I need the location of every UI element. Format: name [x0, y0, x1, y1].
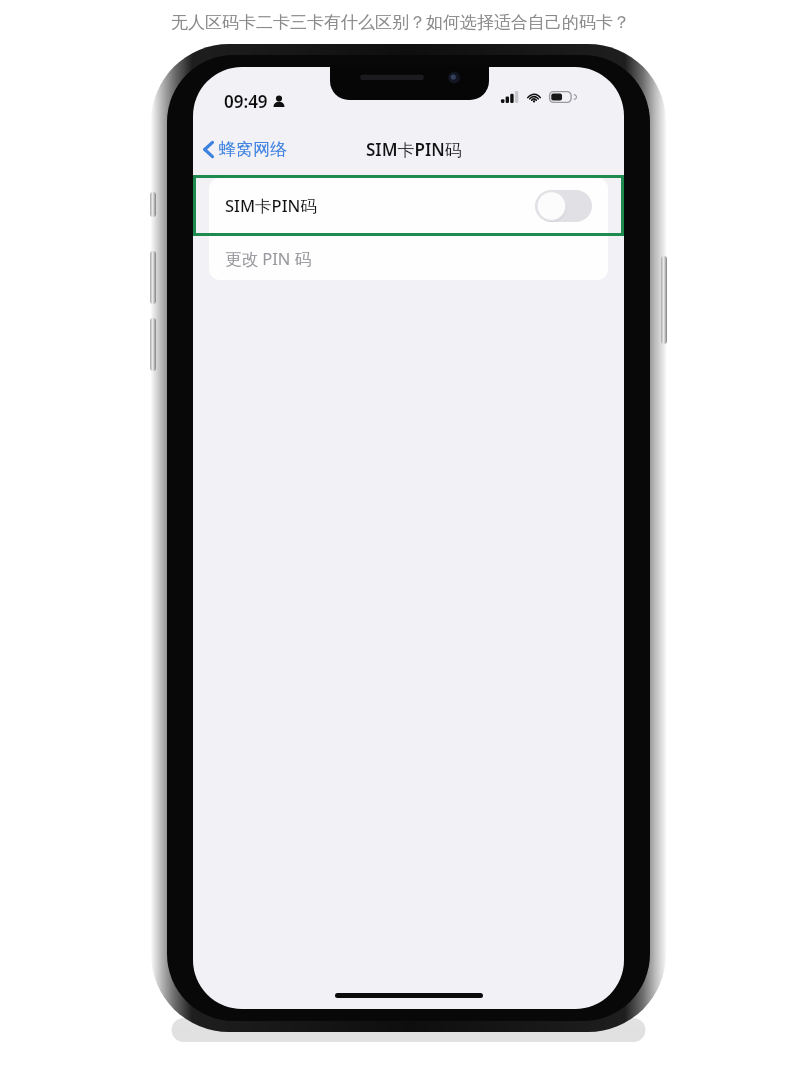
staticText: 09:49 — [224, 90, 268, 113]
button[interactable]: SIM卡PIN码 — [209, 178, 608, 233]
staticText: 更改 PIN 码 — [225, 247, 312, 270]
button[interactable]: SIM PIN toggle, off — [535, 190, 592, 222]
staticText: 蜂窝网络 — [219, 139, 287, 160]
staticText: SIM卡PIN码 — [366, 138, 462, 161]
staticText: SIM卡PIN码 — [225, 194, 317, 217]
button[interactable]: 更改 PIN 码 — [209, 236, 608, 280]
button[interactable]: 蜂窝网络 — [196, 132, 294, 167]
staticText: 无人区码卡二卡三卡有什么区别？如何选择适合自己的码卡？ — [171, 12, 630, 33]
